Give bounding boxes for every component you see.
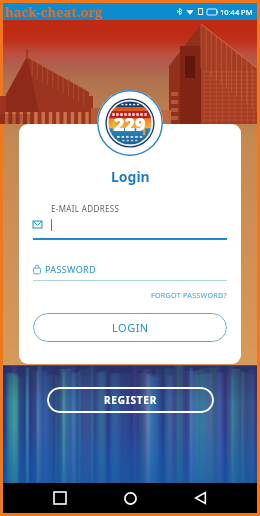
button[interactable]: Home (115, 483, 145, 513)
button[interactable]: LOGIN (33, 313, 227, 342)
staticText: 10:44 PM (220, 7, 253, 17)
button[interactable]: Back (185, 483, 215, 513)
staticText: 229 (114, 112, 146, 137)
button[interactable]: REGISTER (47, 387, 214, 413)
staticText: PASSWORD (45, 263, 96, 275)
button[interactable]: Recents (45, 483, 75, 513)
button[interactable]: FORGOT PASSWORD? (151, 290, 227, 300)
staticText: Login (111, 167, 150, 186)
staticText: E-MAIL ADDRESS (51, 203, 120, 214)
staticText: REGISTER (104, 393, 158, 407)
staticText: hack-cheat.org (5, 3, 103, 20)
staticText: LOGIN (112, 320, 149, 335)
